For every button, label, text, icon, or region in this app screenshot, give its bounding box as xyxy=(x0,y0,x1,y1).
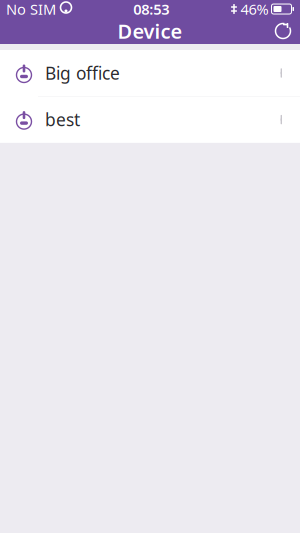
button[interactable]: Refresh xyxy=(266,18,300,44)
staticText: Device xyxy=(117,18,182,44)
staticText: Big office xyxy=(45,61,120,84)
button[interactable]: best xyxy=(0,97,300,143)
staticText: 08:53 xyxy=(133,0,169,19)
button[interactable]: Big office xyxy=(0,50,300,96)
staticText: best xyxy=(45,108,80,131)
staticText: No SIM xyxy=(6,0,56,19)
staticText: 46% xyxy=(240,0,268,19)
